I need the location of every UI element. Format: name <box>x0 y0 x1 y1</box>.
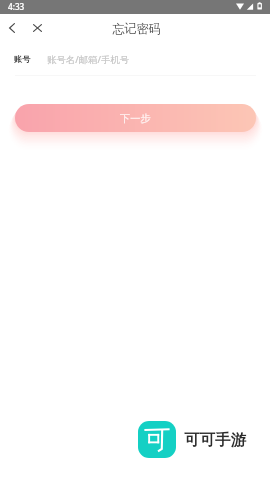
button[interactable]: Back <box>0 14 24 43</box>
button[interactable]: 下一步 <box>15 104 256 132</box>
staticText: 4:33 <box>8 1 25 12</box>
staticText: 忘记密码 <box>112 21 161 36</box>
staticText: 下一步 <box>120 112 151 125</box>
button[interactable]: Close <box>24 14 50 43</box>
staticText: 可可手游 <box>184 430 246 450</box>
staticText: 账号名/邮箱/手机号 <box>47 53 130 66</box>
staticText: 账号 <box>14 54 31 64</box>
